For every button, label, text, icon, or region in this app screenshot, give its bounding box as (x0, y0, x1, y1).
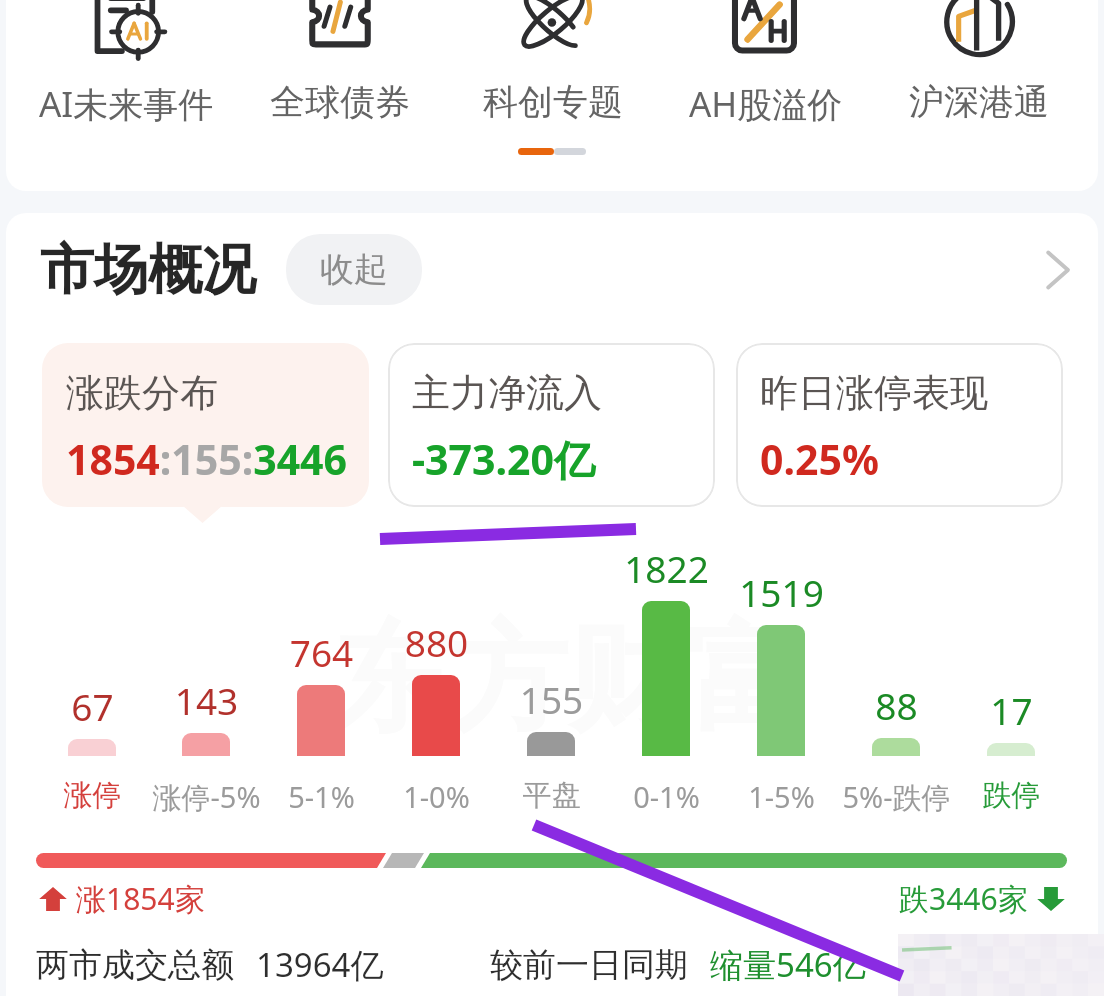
staticText: 涨1854家 (76, 878, 205, 919)
button[interactable]: 科创专题 (446, 0, 659, 124)
staticText: 科创专题 (483, 80, 623, 124)
staticText: 沪深港通 (909, 80, 1049, 124)
staticText: 0-1% (589, 777, 744, 816)
button[interactable]: 沪深港通 (872, 0, 1085, 124)
button[interactable]: AH股溢价 (659, 0, 872, 128)
staticText: 1-0% (359, 777, 514, 816)
staticText: 13964亿 (256, 942, 384, 987)
button[interactable]: 收起 (286, 234, 422, 305)
staticText: 昨日涨停表现 (760, 369, 988, 417)
staticText: 两市成交总额 (36, 944, 234, 986)
staticText: 0.25% (760, 431, 879, 487)
staticText: 跌3446家 (899, 878, 1028, 919)
staticText: 880 (379, 617, 494, 667)
staticText: 市场概况 (40, 236, 256, 304)
button[interactable]: 展开更多 (1032, 246, 1080, 294)
button[interactable]: 昨日涨停表现 (736, 343, 1063, 507)
button[interactable]: 主力净流入 (388, 343, 715, 507)
button[interactable]: 全球债券 (233, 0, 446, 124)
staticText: 东方财富 (332, 605, 804, 754)
staticText: 5-1% (244, 777, 399, 816)
staticText: 涨停 (15, 777, 170, 814)
staticText: 1822 (609, 543, 724, 593)
staticText: 17 (954, 685, 1069, 735)
staticText: 1-5% (704, 777, 859, 816)
staticText: 较前一日同期 (490, 944, 688, 986)
staticText: 收起 (320, 248, 388, 291)
staticText: 跌停 (934, 777, 1089, 814)
staticText: AI未来事件 (39, 80, 214, 128)
staticText: 主力净流入 (412, 369, 602, 417)
staticText: AH股溢价 (689, 80, 843, 128)
staticText: 涨停-5% (129, 777, 284, 817)
staticText: 涨跌分布 (66, 369, 218, 417)
staticText: 5%-跌停 (819, 777, 974, 817)
staticText: 缩量546亿 (710, 942, 866, 987)
button[interactable]: 涨跌分布 (42, 343, 369, 507)
staticText: 平盘 (474, 777, 629, 814)
button[interactable]: AI未来事件 (19, 0, 233, 128)
staticText: 67 (35, 681, 150, 731)
staticText: 155 (494, 674, 609, 724)
staticText: 764 (264, 627, 379, 677)
staticText: 1519 (724, 567, 839, 617)
staticText: 88 (839, 680, 954, 730)
staticText: 143 (149, 675, 264, 725)
staticText: 全球债券 (270, 80, 410, 124)
staticText: 1854:155:3446 (66, 431, 348, 487)
staticText: -373.20亿 (412, 431, 595, 487)
